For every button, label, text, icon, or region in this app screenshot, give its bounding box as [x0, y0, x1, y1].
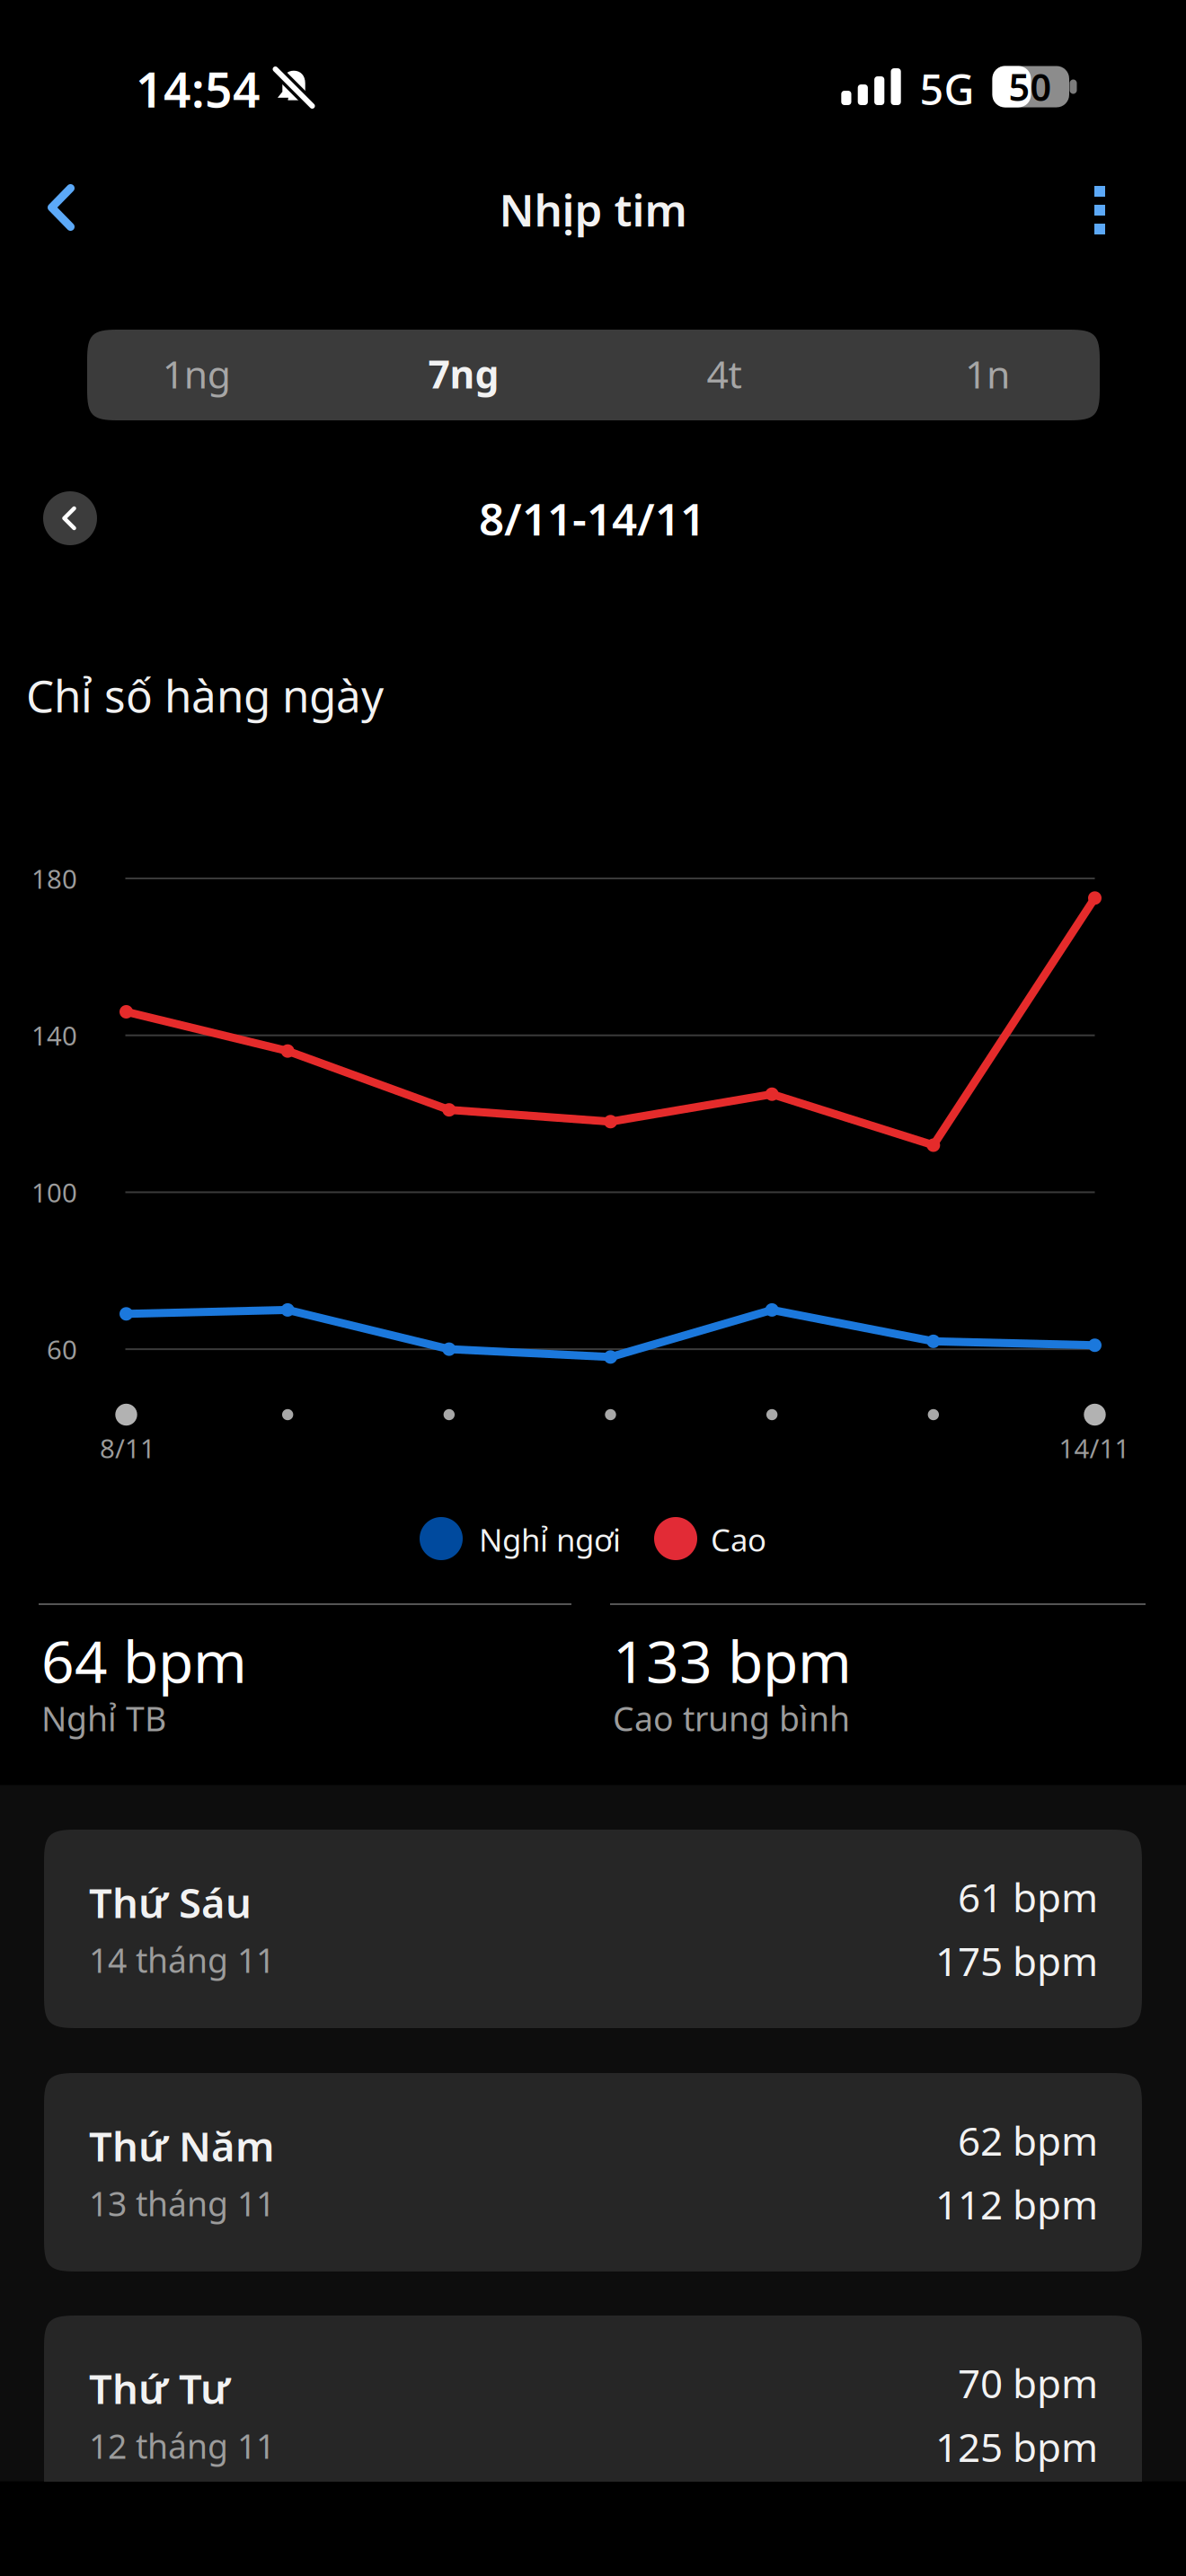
staticText: 60 [47, 1332, 77, 1367]
staticText: Nhịp tim [499, 180, 687, 239]
button[interactable]: Thứ Tư [44, 2316, 1142, 2514]
button[interactable]: More options [1050, 156, 1149, 264]
staticText: 64 bpm [41, 1623, 247, 1699]
staticText: 133 bpm [613, 1623, 852, 1699]
staticText: 8/11 [100, 1430, 155, 1465]
staticText: Thứ Năm [89, 2119, 275, 2173]
staticText: Thứ Sáu [89, 1875, 252, 1929]
button[interactable]: 4t [598, 328, 850, 419]
staticText: Cao trung bình [613, 1696, 850, 1741]
staticText: 1ng [162, 348, 231, 399]
staticText: 1n [965, 348, 1010, 399]
staticText: 7ng [428, 348, 499, 399]
button[interactable]: 1ng [71, 328, 322, 419]
staticText: 70 bpm [958, 2357, 1098, 2409]
button[interactable]: Thứ Sáu [44, 1830, 1142, 2028]
button[interactable]: Previous period [43, 491, 97, 545]
staticText: 100 [31, 1175, 77, 1210]
staticText: 5G [920, 61, 974, 117]
staticText: 62 bpm [958, 2114, 1098, 2167]
button[interactable]: Thứ Năm [44, 2073, 1142, 2272]
button[interactable]: 7ng [338, 328, 589, 419]
button[interactable]: Back [7, 154, 115, 261]
staticText: 14 tháng 11 [89, 1938, 275, 1982]
staticText: Chỉ số hàng ngày [26, 666, 384, 725]
staticText: 12 tháng 11 [89, 2423, 275, 2468]
staticText: 175 bpm [935, 1935, 1098, 1987]
staticText: Nghỉ TB [41, 1696, 166, 1741]
staticText: 13 tháng 11 [89, 2181, 275, 2226]
staticText: 14/11 [1059, 1430, 1130, 1465]
staticText: 125 bpm [935, 2420, 1098, 2473]
button[interactable]: 1n [862, 328, 1113, 419]
staticText: Thứ Tư [89, 2361, 230, 2415]
staticText: 4t [707, 348, 742, 399]
staticText: 50 [1009, 62, 1052, 111]
staticText: 61 bpm [958, 1871, 1098, 1923]
staticText: 14:54 [136, 57, 261, 121]
staticText: Nghỉ ngơi [479, 1519, 621, 1560]
staticText: 112 bpm [935, 2178, 1098, 2230]
staticText: 140 [31, 1018, 77, 1053]
staticText: 8/11-14/11 [479, 489, 705, 548]
staticText: 180 [31, 861, 77, 896]
staticText: Cao [711, 1519, 766, 1560]
